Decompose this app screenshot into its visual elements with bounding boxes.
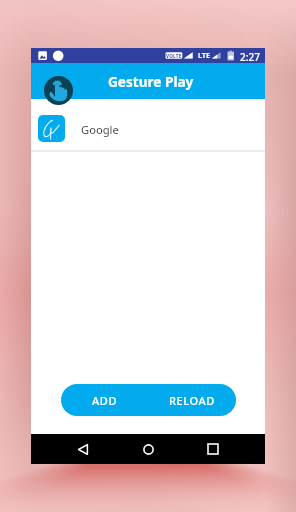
button[interactable]: ADD [61,384,148,416]
button[interactable]: RELOAD [148,384,236,416]
staticText: VOLTE [166,53,182,59]
button[interactable]: Recent apps [208,439,218,459]
staticText: LTE [198,50,211,60]
staticText: RELOAD [169,393,215,408]
button[interactable]: Back [78,439,88,459]
staticText: Google [81,122,119,137]
staticText: ADD [92,393,118,408]
button[interactable]: App icon [44,76,73,105]
staticText: Gesture Play [108,72,194,91]
button[interactable]: Google [31,99,265,150]
button[interactable]: Home [143,439,154,459]
staticText: 2:27 [240,50,260,64]
